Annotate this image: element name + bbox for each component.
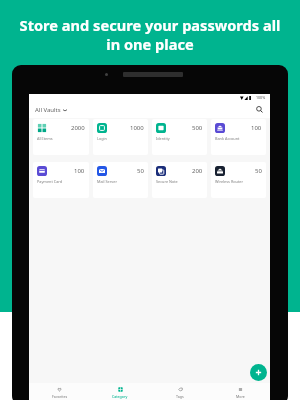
staticText: 2000 [71, 124, 85, 132]
button[interactable]: Tags [150, 383, 210, 400]
staticText: 50 [137, 167, 144, 175]
staticText: Identity [156, 136, 170, 141]
staticText: Category [112, 394, 128, 399]
staticText: 500 [192, 124, 203, 132]
button[interactable]: 50 [211, 162, 266, 198]
button[interactable]: 500 [152, 119, 207, 155]
staticText: Bank Account [215, 136, 240, 141]
staticText: 50 [255, 167, 262, 175]
button[interactable]: 200 [152, 162, 207, 198]
staticText: 100 [74, 167, 85, 175]
staticText: Wireless Router [215, 179, 243, 184]
staticText: 200 [192, 167, 203, 175]
button[interactable]: 2000 [33, 119, 89, 155]
staticText: Store and secure your passwords all in o… [14, 15, 286, 55]
staticText: All Vaults [35, 106, 61, 114]
staticText: Tags [176, 394, 184, 399]
staticText: Payment Card [37, 179, 63, 184]
staticText: Secure Note [156, 179, 178, 184]
button[interactable]: Favorites [29, 383, 90, 400]
staticText: Login [97, 136, 107, 141]
staticText: All Items [37, 136, 53, 141]
staticText: 100 [251, 124, 262, 132]
staticText: More [236, 394, 245, 399]
staticText: Favorites [52, 394, 68, 399]
button[interactable]: Add item [250, 364, 267, 381]
button[interactable]: Category [90, 383, 150, 400]
staticText: Mail Server [97, 179, 117, 184]
staticText: 100% [256, 95, 266, 100]
button[interactable]: 100 [211, 119, 266, 155]
button[interactable]: 1000 [93, 119, 148, 155]
button[interactable]: 50 [93, 162, 148, 198]
button[interactable]: More [210, 383, 270, 400]
button[interactable]: Search [253, 103, 266, 116]
button[interactable]: All Vaults [35, 106, 67, 114]
button[interactable]: 100 [33, 162, 89, 198]
staticText: 1000 [130, 124, 144, 132]
